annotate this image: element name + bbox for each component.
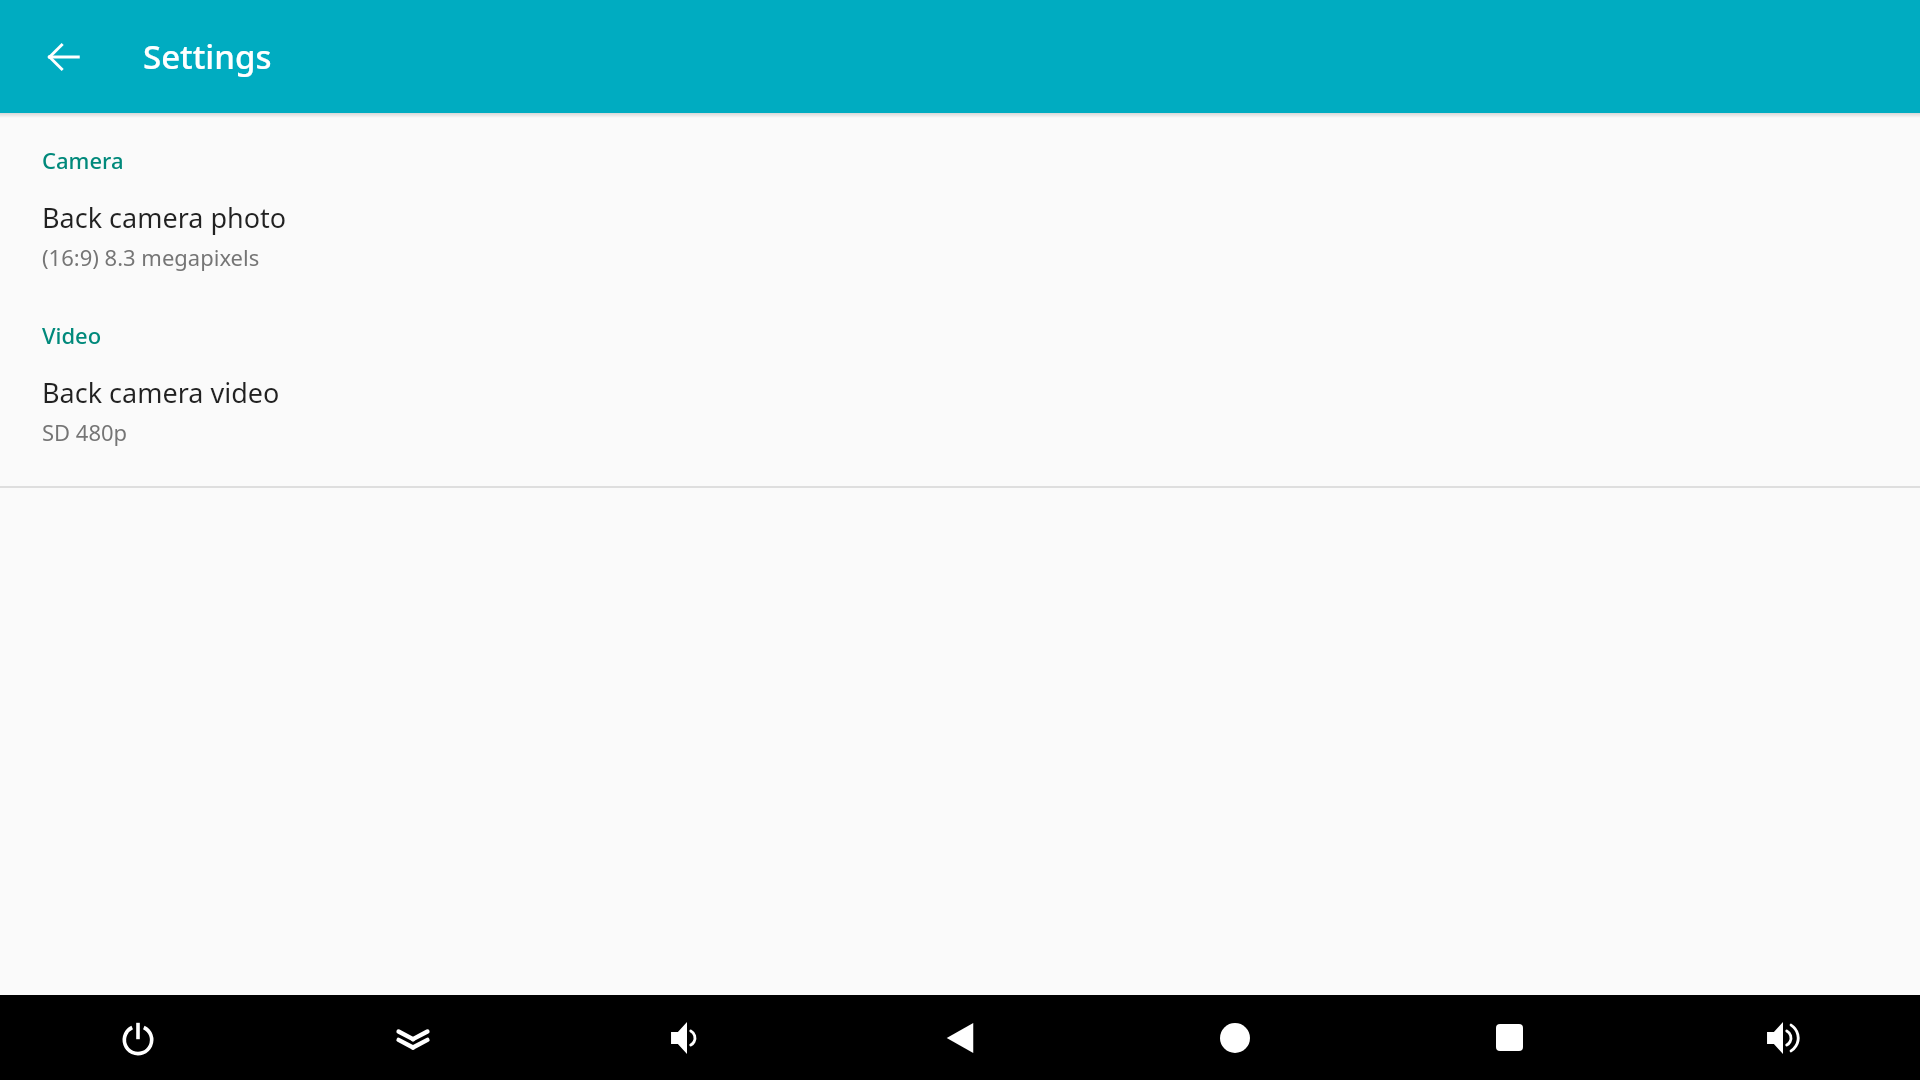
button[interactable]: Volume down — [550, 995, 824, 1080]
button[interactable]: Back — [824, 995, 1098, 1080]
staticText: Video — [42, 320, 102, 350]
button[interactable]: Back camera video — [0, 368, 1920, 453]
button[interactable]: Volume up — [1646, 995, 1920, 1080]
button[interactable]: Back — [30, 24, 96, 90]
staticText: Camera — [42, 145, 124, 175]
staticText: Settings — [143, 34, 272, 79]
staticText: SD 480p — [42, 417, 128, 447]
button[interactable]: Collapse — [275, 995, 550, 1080]
button[interactable]: Recents — [1372, 995, 1646, 1080]
staticText: Back camera photo — [42, 199, 287, 236]
staticText: Back camera video — [42, 374, 280, 411]
button[interactable]: Home — [1098, 995, 1372, 1080]
button[interactable]: Back camera photo — [0, 193, 1920, 278]
button[interactable]: Power — [0, 995, 275, 1080]
staticText: (16:9) 8.3 megapixels — [42, 242, 260, 272]
